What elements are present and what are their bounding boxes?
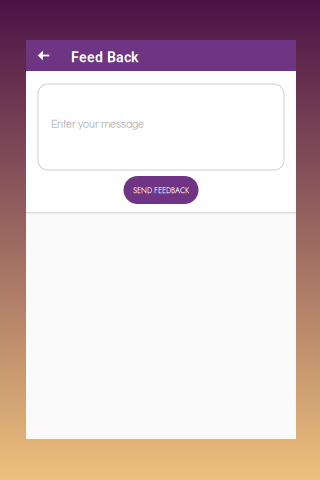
staticText: Feed Back [71, 49, 139, 66]
staticText: Enter your message [51, 119, 144, 130]
button[interactable]: Back [26, 40, 61, 71]
staticText: SEND FEEDBACK [133, 185, 189, 196]
button[interactable]: SEND FEEDBACK [123, 176, 198, 204]
